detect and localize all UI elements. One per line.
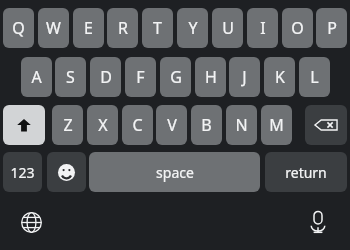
staticText: W [46,17,61,39]
staticText: R [118,17,128,39]
button[interactable]: R [107,8,138,48]
button[interactable]: V [156,105,187,145]
button[interactable]: space [89,152,260,192]
staticText: G [170,66,182,88]
staticText: F [136,66,145,88]
button[interactable]: N [226,105,257,145]
button[interactable]: O [282,8,313,48]
staticText: J [242,66,247,88]
button[interactable]: I [247,8,278,48]
staticText: 123 [10,163,35,182]
button[interactable]: T [142,8,173,48]
button[interactable]: M [261,105,292,145]
button[interactable]: D [90,57,121,97]
staticText: N [235,114,248,136]
staticText: return [285,163,327,182]
staticText: A [31,66,42,88]
button[interactable]: E [73,8,104,48]
staticText: C [132,114,143,136]
staticText: D [100,66,112,88]
button[interactable]: P [316,8,347,48]
staticText: T [153,17,162,39]
button[interactable]: L [299,57,330,97]
button[interactable]: K [264,57,295,97]
staticText: U [222,17,234,39]
button[interactable]: 123 [3,152,42,192]
button[interactable]: B [191,105,222,145]
button[interactable]: J [229,57,260,97]
button[interactable]: Backspace [305,105,347,145]
button[interactable]: Y [177,8,208,48]
staticText: space [156,163,194,182]
button[interactable]: S [55,57,86,97]
button[interactable]: F [125,57,156,97]
staticText: X [98,114,108,136]
button[interactable]: X [87,105,118,145]
staticText: Y [188,17,198,39]
staticText: Q [12,17,25,39]
button[interactable]: C [122,105,153,145]
staticText: K [275,66,285,88]
button[interactable]: Z [52,105,83,145]
staticText: B [201,114,212,136]
staticText: O [291,17,304,39]
staticText: E [84,17,93,39]
button[interactable]: H [195,57,226,97]
button[interactable]: A [21,57,52,97]
button[interactable]: G [160,57,191,97]
staticText: H [205,66,217,88]
staticText: L [310,66,319,88]
button[interactable]: Shift [3,105,45,145]
button[interactable]: Emoji [47,152,86,192]
button[interactable]: return [265,152,347,192]
staticText: M [269,114,284,136]
staticText: V [167,114,177,136]
staticText: I [260,17,266,39]
button[interactable]: W [38,8,69,48]
button[interactable]: Q [3,8,34,48]
button[interactable]: Change keyboard language [12,203,50,241]
button[interactable]: U [212,8,243,48]
staticText: S [66,66,75,88]
staticText: P [327,17,337,39]
button[interactable]: Voice input [299,203,337,241]
staticText: Z [63,114,73,136]
